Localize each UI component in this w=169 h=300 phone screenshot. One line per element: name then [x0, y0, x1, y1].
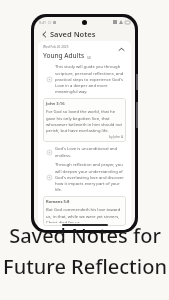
staticText: by John A [109, 135, 123, 139]
staticText: John 3:16 [46, 101, 65, 107]
button[interactable]: Through reflection and prayer, you will … [43, 162, 126, 192]
staticText: This study will guide you through script… [55, 64, 124, 94]
staticText: Future Reflection [3, 253, 167, 280]
staticText: God's Love is unconditional and endless. [55, 146, 124, 158]
staticText: (4) [87, 56, 91, 60]
staticText: Through reflection and prayer, you will … [55, 162, 124, 192]
staticText: Romans 5:8 [46, 199, 70, 205]
staticText: For God so loved the world, that he gave… [46, 109, 123, 133]
button[interactable]: This study will guide you through script… [43, 64, 126, 94]
staticText: Saved Notes [50, 29, 96, 39]
button[interactable]: Wed Feb 26 2025 [38, 41, 131, 230]
button[interactable]: Romans 5:8 [43, 196, 126, 226]
staticText: 9:41 [39, 20, 46, 25]
button[interactable]: John 3:16 [43, 98, 126, 142]
staticText: But God commendeth his love toward us, i… [46, 207, 123, 223]
button[interactable]: God's Love is unconditional and endless. [43, 146, 126, 158]
staticText: Wed Feb 26 2025 [43, 45, 69, 49]
staticText: Young Adults [43, 51, 85, 60]
button[interactable]: Collapse [117, 45, 126, 54]
button[interactable]: Back [39, 29, 49, 39]
staticText: Saved Notes for [9, 222, 161, 249]
